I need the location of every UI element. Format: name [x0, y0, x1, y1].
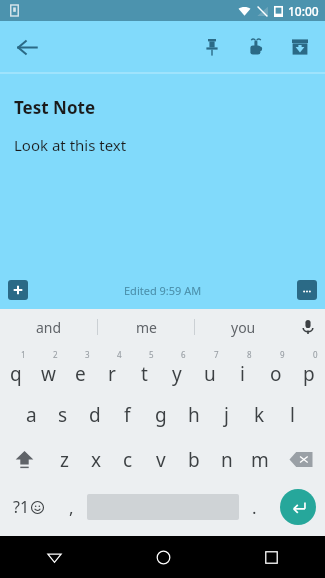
staticText: h — [188, 402, 200, 428]
staticText: 8 — [247, 349, 252, 360]
staticText: v — [156, 447, 166, 473]
staticText: Test Note — [14, 96, 96, 119]
button[interactable]: y — [160, 347, 193, 392]
button[interactable]: Archive — [279, 26, 321, 68]
staticText: 4 — [117, 349, 122, 360]
button[interactable]: you — [195, 309, 291, 345]
button[interactable]: e — [64, 347, 96, 392]
staticText: 3 — [85, 349, 90, 360]
staticText: w — [41, 361, 56, 387]
button[interactable]: d — [79, 392, 111, 437]
staticText: p — [303, 361, 315, 387]
button[interactable]: Back — [0, 536, 109, 578]
button[interactable]: a — [15, 392, 47, 437]
button[interactable]: g — [144, 392, 177, 437]
button[interactable]: n — [210, 437, 243, 482]
staticText: 1 — [21, 349, 26, 360]
staticText: z — [60, 447, 69, 473]
button[interactable]: Test Note — [0, 74, 325, 271]
button[interactable]: More options — [297, 280, 317, 300]
button[interactable]: r — [96, 347, 128, 392]
staticText: u — [204, 361, 216, 387]
button[interactable]: and — [0, 309, 97, 345]
staticText: 7 — [214, 349, 219, 360]
button[interactable]: Voice input — [291, 309, 325, 345]
staticText: f — [124, 402, 131, 428]
button[interactable]: Reminder — [235, 26, 277, 68]
button[interactable]: c — [112, 437, 144, 482]
staticText: 2 — [53, 349, 58, 360]
button[interactable]: o — [259, 347, 292, 392]
button[interactable]: Add — [8, 280, 28, 300]
staticText: e — [75, 361, 86, 387]
staticText: 10:00 — [288, 3, 319, 19]
button[interactable]: u — [193, 347, 226, 392]
staticText: g — [155, 402, 167, 428]
button[interactable]: m — [243, 437, 276, 482]
button[interactable]: k — [243, 392, 276, 437]
button[interactable]: z — [48, 437, 80, 482]
staticText: j — [224, 402, 229, 428]
button[interactable]: ?1 — [0, 482, 56, 532]
button[interactable]: Pin — [191, 26, 233, 68]
staticText: ?1 — [13, 496, 30, 518]
button[interactable]: b — [177, 437, 210, 482]
button[interactable]: Enter — [280, 489, 316, 525]
staticText: q — [10, 361, 22, 387]
staticText: l — [290, 402, 295, 428]
button[interactable]: , — [56, 482, 87, 532]
staticText: o — [270, 361, 282, 387]
button[interactable]: q — [0, 347, 32, 392]
staticText: , — [69, 496, 74, 519]
staticText: 5 — [149, 349, 154, 360]
button[interactable]: j — [210, 392, 243, 437]
staticText: t — [141, 361, 148, 387]
button[interactable]: s — [47, 392, 79, 437]
button[interactable]: me — [98, 309, 194, 345]
staticText: n — [221, 447, 233, 473]
staticText: r — [108, 361, 116, 387]
button[interactable]: p — [292, 347, 325, 392]
staticText: 6 — [181, 349, 186, 360]
button[interactable]: x — [80, 437, 112, 482]
button[interactable]: Recent apps — [217, 536, 325, 578]
staticText: Edited 9:59 AM — [124, 283, 202, 298]
staticText: k — [254, 402, 265, 428]
staticText: you — [231, 318, 256, 337]
staticText: x — [91, 447, 102, 473]
staticText: c — [123, 447, 133, 473]
staticText: . — [252, 496, 257, 519]
staticText: m — [251, 447, 269, 473]
button[interactable]: v — [144, 437, 177, 482]
button[interactable]: t — [128, 347, 160, 392]
staticText: and — [36, 318, 62, 337]
button[interactable]: Back — [6, 26, 48, 68]
staticText: i — [240, 361, 245, 387]
staticText: 0 — [313, 349, 318, 360]
staticText: b — [188, 447, 200, 473]
button[interactable]: f — [111, 392, 144, 437]
staticText: 9 — [280, 349, 285, 360]
button[interactable]: . — [239, 482, 270, 532]
button[interactable]: h — [177, 392, 210, 437]
staticText: y — [172, 361, 182, 387]
button[interactable]: l — [276, 392, 309, 437]
button[interactable]: Shift — [0, 437, 48, 482]
staticText: a — [26, 402, 37, 428]
button[interactable]: w — [32, 347, 64, 392]
button[interactable]: Home — [109, 536, 217, 578]
button[interactable]: i — [226, 347, 259, 392]
staticText: me — [136, 318, 157, 337]
staticText: d — [89, 402, 101, 428]
button[interactable]: Backspace — [276, 437, 325, 482]
staticText: s — [58, 402, 68, 428]
staticText: Look at this text — [14, 135, 127, 155]
